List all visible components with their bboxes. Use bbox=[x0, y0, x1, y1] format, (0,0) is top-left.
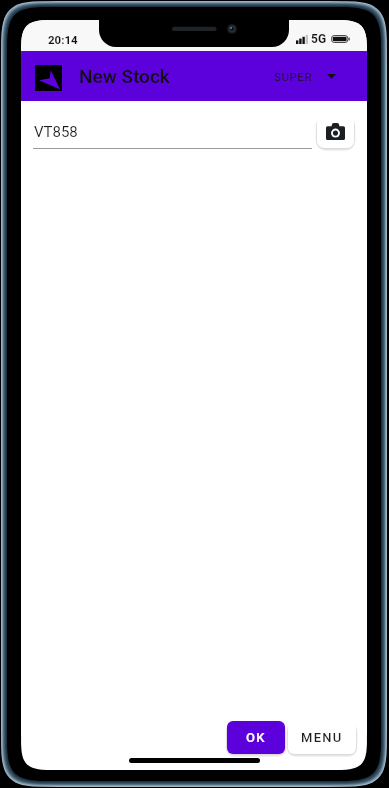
staticText: 20:14 bbox=[48, 33, 78, 46]
button[interactable]: MENU bbox=[288, 721, 356, 754]
staticText: OK bbox=[246, 730, 266, 745]
button[interactable]: Take photo bbox=[317, 115, 354, 148]
staticText: New Stock bbox=[79, 65, 170, 87]
staticText: 5G bbox=[311, 32, 327, 46]
staticText: MENU bbox=[301, 730, 343, 745]
staticText: VT858 bbox=[34, 123, 78, 141]
button[interactable]: OK bbox=[227, 721, 285, 754]
staticText: SUPER bbox=[274, 70, 313, 83]
button[interactable]: SUPER bbox=[270, 60, 340, 93]
